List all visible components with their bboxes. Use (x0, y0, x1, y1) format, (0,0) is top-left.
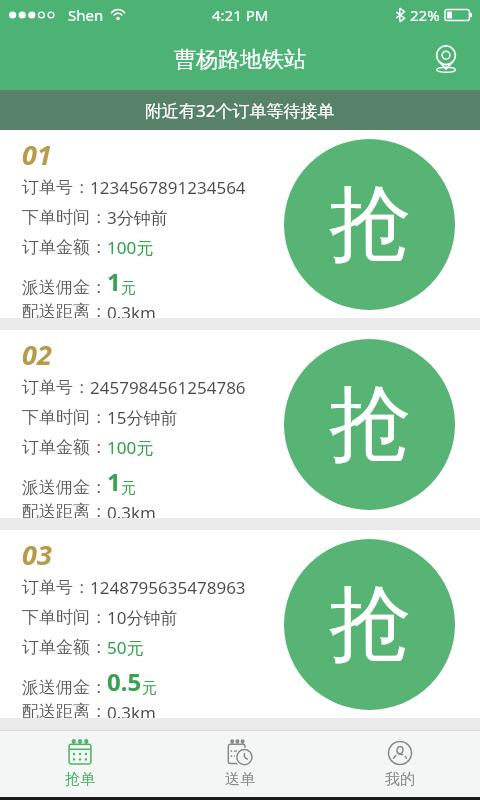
staticText: 抢 (329, 573, 411, 676)
staticText: 下单时间： (22, 407, 107, 428)
staticText: 元 (142, 679, 157, 698)
staticText: 抢 (329, 373, 411, 476)
staticText: 10分钟前 (107, 606, 178, 629)
staticText: 0.5 (107, 665, 142, 698)
staticText: 派送佣金： (22, 477, 107, 498)
button[interactable]: 01 (0, 130, 480, 318)
button[interactable]: 03 (0, 530, 480, 718)
staticText: 附近有32个订单等待接单 (145, 99, 335, 122)
staticText: 0.3km (107, 301, 156, 318)
staticText: 100元 (107, 236, 154, 259)
button[interactable]: 抢 (284, 139, 455, 310)
staticText: 0.3km (107, 501, 156, 518)
staticText: 15分钟前 (107, 406, 178, 429)
staticText: 50元 (107, 636, 144, 659)
staticText: 订单金额： (22, 437, 107, 458)
staticText: 订单号： (22, 377, 90, 398)
staticText: 订单金额： (22, 237, 107, 258)
staticText: 配送距离： (22, 701, 107, 718)
staticText: 配送距离： (22, 501, 107, 518)
staticText: 02 (22, 336, 52, 373)
staticText: 订单金额： (22, 637, 107, 658)
staticText: 配送距离： (22, 301, 107, 318)
staticText: 送单 (225, 770, 255, 789)
staticText: 100元 (107, 436, 154, 459)
staticText: 2457984561254786 (90, 376, 246, 399)
button[interactable]: Location (424, 38, 468, 82)
staticText: 01 (22, 136, 52, 173)
staticText: 0.3km (107, 701, 156, 718)
staticText: Shen (68, 5, 104, 25)
staticText: 3分钟前 (107, 206, 168, 229)
button[interactable]: 送单 (160, 731, 320, 797)
button[interactable]: 抢 (284, 339, 455, 510)
staticText: 派送佣金： (22, 677, 107, 698)
staticText: 我的 (385, 770, 415, 789)
staticText: 派送佣金： (22, 277, 107, 298)
staticText: 曹杨路地铁站 (174, 46, 306, 74)
staticText: 下单时间： (22, 207, 107, 228)
staticText: 4:21 PM (212, 5, 269, 25)
staticText: 订单号： (22, 577, 90, 598)
staticText: 抢单 (65, 770, 95, 789)
staticText: 1248795635478963 (90, 576, 246, 599)
staticText: 03 (22, 536, 52, 573)
button[interactable]: 抢 (284, 539, 455, 710)
staticText: 抢 (329, 173, 411, 276)
staticText: 1234567891234564 (90, 176, 246, 199)
staticText: 元 (121, 479, 136, 498)
staticText: 订单号： (22, 177, 90, 198)
staticText: 22% (410, 5, 440, 25)
staticText: 下单时间： (22, 607, 107, 628)
staticText: 元 (121, 279, 136, 298)
button[interactable]: 抢单 (0, 731, 160, 797)
button[interactable]: 02 (0, 330, 480, 518)
staticText: 1 (107, 465, 121, 498)
button[interactable]: 我的 (320, 731, 480, 797)
staticText: 1 (107, 265, 121, 298)
